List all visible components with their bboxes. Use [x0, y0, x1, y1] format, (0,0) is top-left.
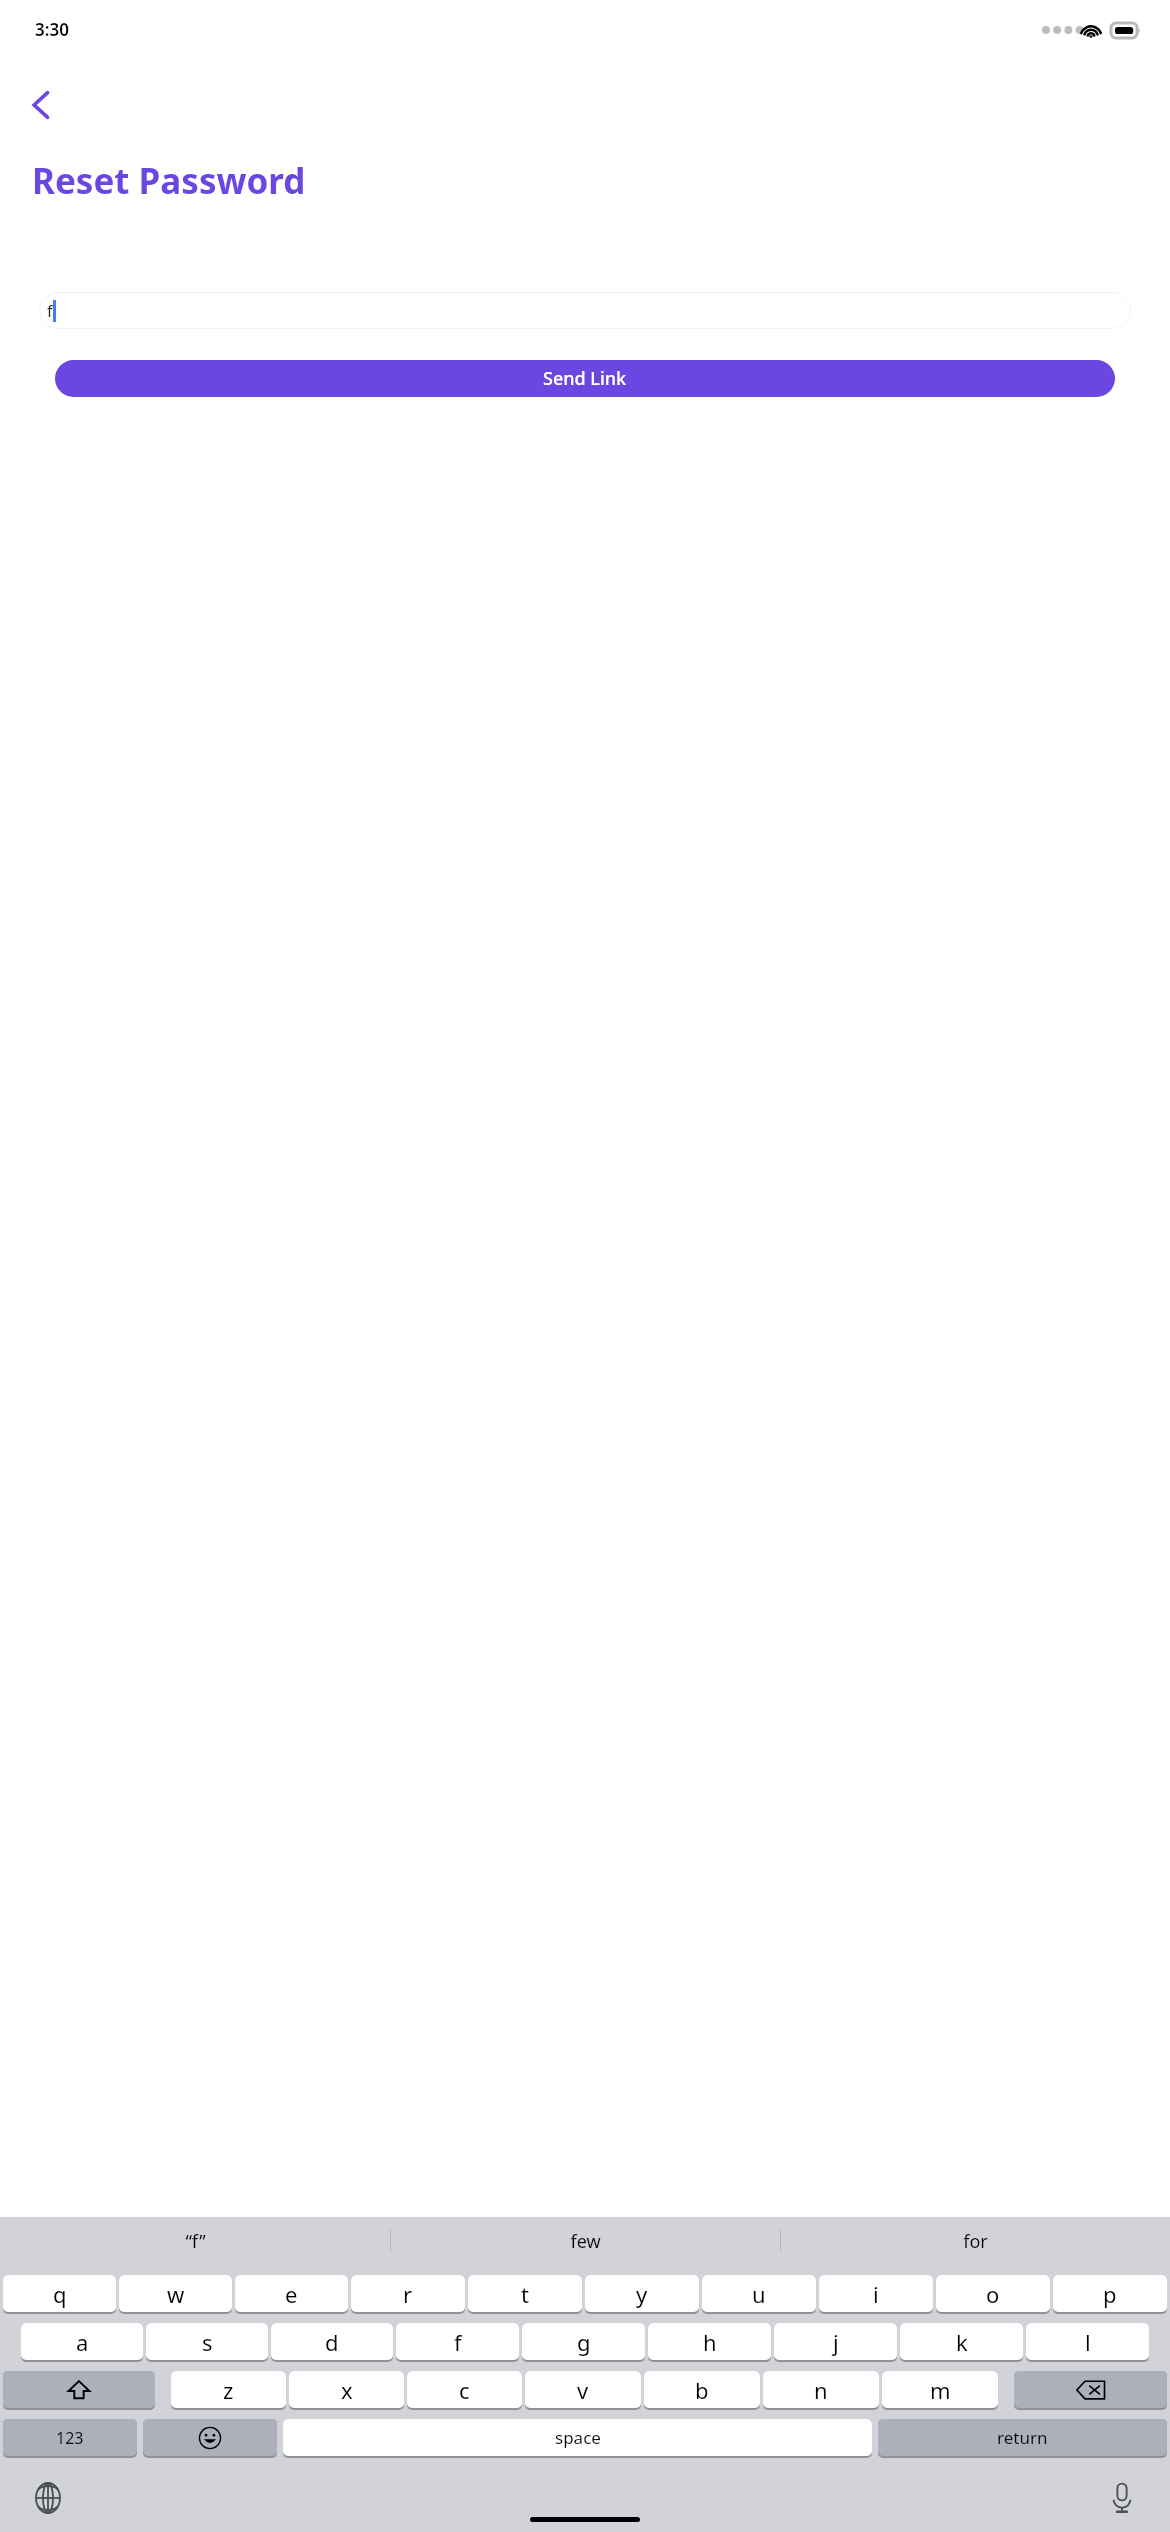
staticText: l: [1085, 2327, 1091, 2357]
button[interactable]: 123: [3, 2419, 137, 2456]
button[interactable]: q: [3, 2275, 116, 2312]
button[interactable]: g: [522, 2323, 645, 2360]
button[interactable]: w: [119, 2275, 232, 2312]
staticText: q: [53, 2279, 67, 2309]
staticText: y: [636, 2279, 648, 2309]
staticText: t: [521, 2279, 529, 2309]
button[interactable]: i: [819, 2275, 933, 2312]
button[interactable]: k: [900, 2323, 1023, 2360]
button[interactable]: m: [882, 2371, 998, 2408]
staticText: v: [577, 2375, 589, 2405]
other: Shift: [3, 2371, 155, 2410]
staticText: Send Link: [543, 366, 627, 391]
button[interactable]: f: [396, 2323, 519, 2360]
button[interactable]: h: [648, 2323, 771, 2360]
button[interactable]: p: [1053, 2275, 1167, 2312]
button[interactable]: j: [774, 2323, 897, 2360]
button[interactable]: c: [407, 2371, 522, 2408]
staticText: p: [1103, 2279, 1117, 2309]
button[interactable]: [3, 2371, 155, 2408]
button[interactable]: b: [644, 2371, 760, 2408]
staticText: r: [403, 2279, 413, 2309]
button[interactable]: z: [171, 2371, 286, 2408]
staticText: j: [833, 2327, 839, 2357]
staticText: x: [341, 2375, 353, 2405]
staticText: m: [930, 2375, 951, 2405]
button[interactable]: space: [283, 2419, 872, 2456]
button[interactable]: o: [936, 2275, 1050, 2312]
other: Emoji: [143, 2419, 277, 2458]
staticText: g: [577, 2327, 591, 2357]
staticText: Reset Password: [32, 157, 306, 205]
button[interactable]: f: [39, 292, 1131, 329]
staticText: e: [285, 2279, 298, 2309]
staticText: b: [695, 2375, 709, 2405]
staticText: for: [963, 2229, 988, 2254]
staticText: i: [873, 2279, 879, 2309]
staticText: o: [986, 2279, 1000, 2309]
staticText: n: [814, 2375, 828, 2405]
button[interactable]: Send Link: [55, 360, 1115, 397]
button[interactable]: Dictation: [1098, 2474, 1146, 2522]
button[interactable]: x: [289, 2371, 404, 2408]
staticText: 3:30: [35, 18, 69, 41]
staticText: c: [459, 2375, 470, 2405]
staticText: d: [325, 2327, 339, 2357]
button[interactable]: few: [391, 2217, 780, 2265]
button[interactable]: Back: [12, 75, 72, 135]
button[interactable]: [143, 2419, 277, 2456]
button[interactable]: n: [763, 2371, 879, 2408]
button[interactable]: for: [781, 2217, 1170, 2265]
button[interactable]: s: [146, 2323, 268, 2360]
staticText: s: [202, 2327, 213, 2357]
button[interactable]: v: [525, 2371, 641, 2408]
staticText: z: [223, 2375, 234, 2405]
button[interactable]: y: [585, 2275, 699, 2312]
button[interactable]: Change keyboard language: [24, 2474, 72, 2522]
button[interactable]: a: [21, 2323, 143, 2360]
staticText: u: [752, 2279, 766, 2309]
staticText: “f”: [185, 2229, 206, 2254]
button[interactable]: return: [878, 2419, 1167, 2456]
staticText: f: [47, 300, 53, 322]
button[interactable]: r: [351, 2275, 465, 2312]
staticText: w: [167, 2279, 185, 2309]
staticText: few: [570, 2229, 601, 2254]
staticText: h: [703, 2327, 717, 2357]
button[interactable]: e: [235, 2275, 348, 2312]
button[interactable]: “f”: [0, 2217, 390, 2265]
staticText: f: [454, 2327, 462, 2357]
button[interactable]: [1014, 2371, 1167, 2408]
staticText: return: [997, 2426, 1048, 2449]
staticText: space: [555, 2426, 601, 2449]
staticText: k: [956, 2327, 968, 2357]
staticText: 123: [56, 2427, 84, 2449]
other: Backspace: [1014, 2371, 1167, 2410]
button[interactable]: d: [271, 2323, 393, 2360]
button[interactable]: l: [1026, 2323, 1149, 2360]
button[interactable]: t: [468, 2275, 582, 2312]
staticText: a: [76, 2327, 89, 2357]
button[interactable]: u: [702, 2275, 816, 2312]
